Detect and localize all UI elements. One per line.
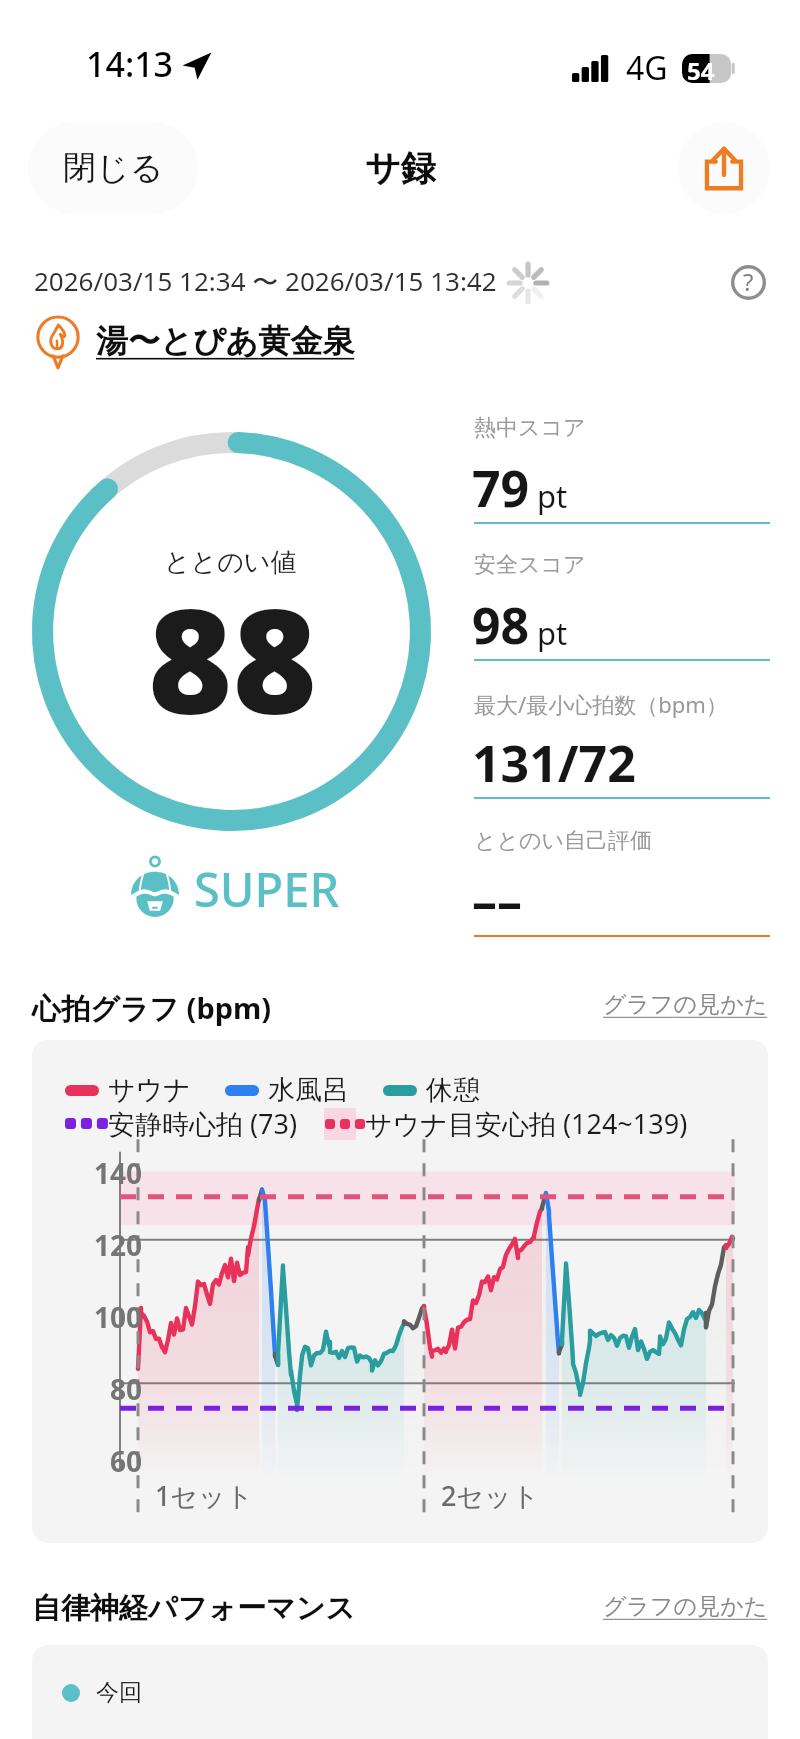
staticText: 14:13 [86, 41, 174, 87]
staticText: 自律神経パフォーマンス [32, 1590, 356, 1627]
staticText: 閉じる [63, 147, 164, 189]
staticText: 54 [687, 54, 715, 83]
staticText: 心拍グラフ (bpm) [32, 988, 272, 1028]
staticText: サウナ目安心拍 (124~139) [365, 1105, 688, 1142]
staticText: 1セット [155, 1477, 254, 1514]
staticText: 最大/最小心拍数（bpm） [474, 689, 728, 719]
staticText: 2026/03/15 12:34 〜 2026/03/15 13:42 [34, 263, 497, 299]
staticText: SUPER [194, 857, 340, 921]
staticText: 今回 [96, 1678, 142, 1707]
staticText: グラフの見かた [603, 1592, 768, 1621]
staticText: ? [743, 265, 754, 298]
button[interactable]: グラフの見かた [603, 990, 768, 1019]
staticText: pt [537, 612, 568, 654]
staticText: –– [472, 867, 522, 935]
button[interactable]: 閉じる [28, 122, 198, 214]
staticText: 131/72 [472, 729, 636, 797]
button[interactable]: グラフの見かた [603, 1592, 768, 1621]
staticText: 80 [110, 1370, 143, 1408]
staticText: 100 [94, 1298, 143, 1336]
staticText: 98 [472, 591, 530, 659]
staticText: 88 [148, 560, 317, 756]
staticText: 120 [94, 1226, 143, 1264]
staticText: ととのい値 [164, 546, 297, 579]
staticText: 安静時心拍 (73) [108, 1105, 298, 1142]
button[interactable]: Help [726, 260, 770, 304]
staticText: 水風呂 [268, 1073, 349, 1107]
button[interactable]: 湯〜とぴあ黄金泉 [30, 313, 355, 369]
staticText: サ録 [365, 146, 436, 190]
staticText: 安全スコア [474, 551, 586, 579]
staticText: 湯〜とぴあ黄金泉 [96, 321, 355, 361]
staticText: pt [537, 475, 568, 517]
staticText: 熱中スコア [474, 414, 586, 442]
staticText: 60 [110, 1442, 143, 1480]
staticText: 休憩 [426, 1073, 480, 1107]
staticText: 2セット [441, 1477, 540, 1514]
staticText: サウナ [108, 1073, 191, 1107]
staticText: 4G [626, 46, 668, 90]
staticText: 79 [472, 454, 530, 522]
staticText: グラフの見かた [603, 990, 768, 1019]
button[interactable]: Share [678, 122, 770, 214]
staticText: 140 [94, 1154, 143, 1192]
staticText: ととのい自己評価 [474, 827, 653, 855]
